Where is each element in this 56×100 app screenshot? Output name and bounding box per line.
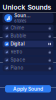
staticText: Piano [10, 65, 23, 71]
staticText: Chime [10, 25, 24, 31]
staticText: 6 tones [14, 19, 26, 23]
staticText: Space [10, 57, 25, 63]
button[interactable]: Chime [2, 25, 53, 31]
button[interactable]: Space [2, 57, 53, 63]
button[interactable]: Apply Sound [5, 85, 51, 92]
button[interactable]: Bubble [2, 33, 53, 39]
staticText: Sound Pack [14, 13, 32, 18]
staticText: Apply Sound [13, 86, 43, 92]
button[interactable]: Piano [2, 65, 53, 71]
staticText: Digital [10, 41, 24, 47]
button[interactable]: Retro [2, 49, 53, 55]
button[interactable]: Sound Pack [2, 13, 53, 23]
staticText: Retro [10, 49, 22, 55]
staticText: Bubble [10, 33, 26, 39]
staticText: Unlock Sounds [2, 3, 51, 11]
button[interactable]: Digital [2, 41, 53, 47]
